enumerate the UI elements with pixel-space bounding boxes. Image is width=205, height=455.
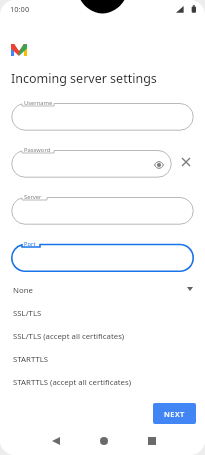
staticText: Username [24,99,53,107]
button[interactable]: None [8,279,178,302]
button[interactable]: Home [93,430,115,452]
button[interactable]: Show password [151,157,166,172]
button[interactable]: Clear password [176,152,196,172]
staticText: Server [24,193,42,201]
staticText: STARTTLS [13,354,49,365]
button[interactable]: Username [11,98,194,131]
staticText: 10:00 [10,4,30,14]
button[interactable]: Port [11,239,194,272]
button[interactable]: STARTTLS [8,348,178,371]
button[interactable]: Recent apps [141,430,163,452]
button[interactable]: Password [11,145,172,178]
staticText: SSL/TLS (accept all certificates) [13,331,125,342]
staticText: Security type [11,285,49,293]
staticText: Incoming server settings [11,70,157,87]
staticText: Port [24,240,36,248]
button[interactable]: SSL/TLS [8,302,178,325]
staticText: STARTTLS (accept all certificates) [13,377,132,388]
button[interactable]: NEXT [153,403,196,424]
button[interactable]: Security type dropdown [183,282,197,296]
button[interactable]: STARTTLS (accept all certificates) [8,371,178,394]
button[interactable]: Server [11,192,194,225]
button[interactable]: Back [45,430,67,452]
staticText: Password [24,146,51,154]
staticText: None [13,285,33,296]
staticText: NEXT [164,409,185,419]
button[interactable]: SSL/TLS (accept all certificates) [8,325,178,348]
staticText: SSL/TLS [13,308,42,319]
